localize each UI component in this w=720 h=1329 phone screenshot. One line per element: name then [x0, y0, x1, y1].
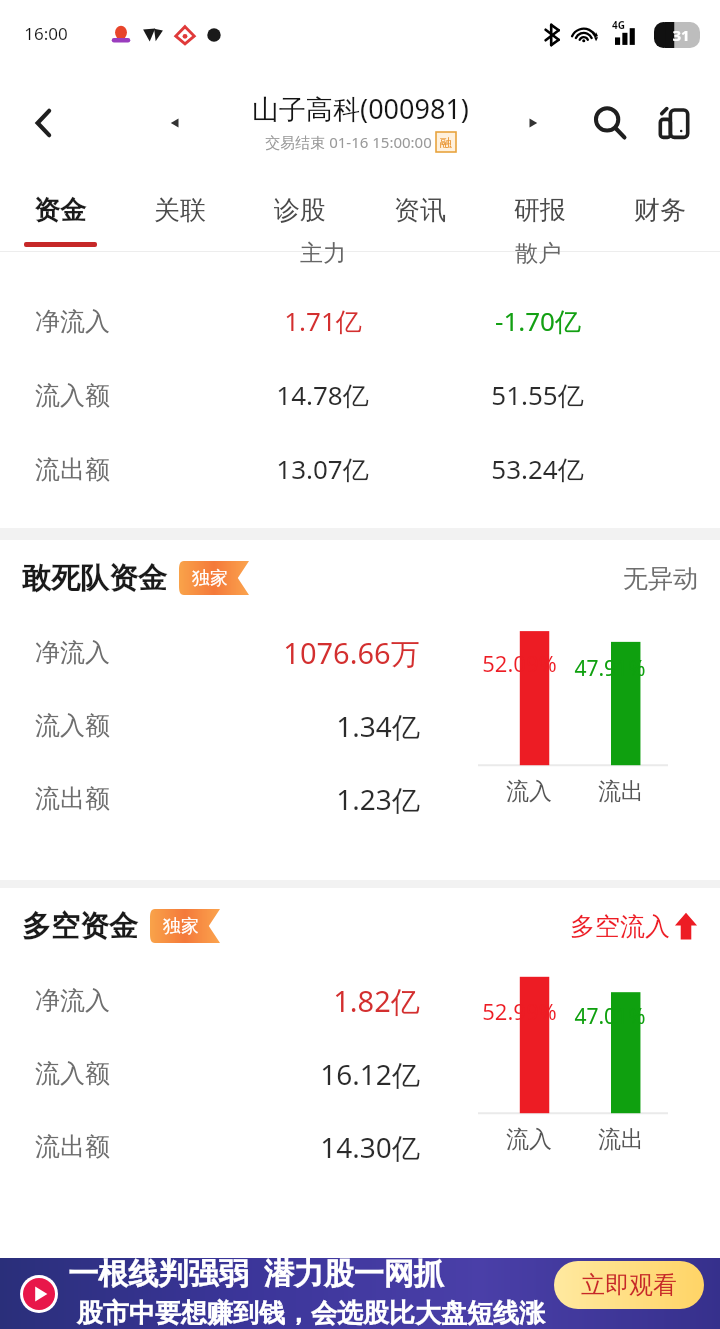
staticText: 51.55亿 — [491, 377, 584, 413]
button[interactable]: 关联 — [120, 176, 240, 251]
staticText: 1.34亿 — [336, 707, 420, 745]
button[interactable]: 净流入 — [0, 284, 720, 358]
button[interactable]: 净流入 — [0, 964, 720, 1037]
staticText: 诊股 — [274, 194, 326, 227]
button[interactable]: 多空资金 — [0, 888, 720, 964]
staticText: 敢死队资金 — [22, 560, 167, 597]
button[interactable]: 流出额 — [0, 1110, 720, 1183]
staticText: 独家 — [192, 567, 228, 590]
staticText: 流入 — [506, 777, 552, 806]
staticText: 关联 — [154, 194, 206, 227]
staticText: 1.23亿 — [336, 780, 420, 818]
button[interactable]: 资金 — [0, 176, 120, 251]
staticText: 多空流入 — [570, 911, 670, 942]
staticText: 1.82亿 — [333, 981, 420, 1021]
staticText: 流出 — [598, 1125, 644, 1154]
staticText: 47.01% — [574, 1002, 646, 1031]
staticText: 16.12亿 — [320, 1055, 420, 1093]
staticText: 独家 — [163, 915, 199, 938]
staticText: 1.71亿 — [284, 303, 362, 339]
staticText: 53.24亿 — [491, 451, 584, 487]
button[interactable]: Compare — [642, 91, 706, 155]
button[interactable]: 资讯 — [360, 176, 480, 251]
button[interactable]: 流出额 — [0, 762, 720, 835]
staticText: 47.91% — [574, 654, 646, 683]
button[interactable]: Search — [578, 91, 642, 155]
button[interactable]: 流入额 — [0, 358, 720, 432]
button[interactable]: 流出额 — [0, 432, 720, 506]
button[interactable]: 立即观看 — [554, 1261, 704, 1309]
staticText: 财务 — [634, 194, 686, 227]
button[interactable]: 流入额 — [0, 1037, 720, 1110]
staticText: 16:00 — [24, 22, 68, 45]
staticText: 研报 — [514, 194, 566, 227]
staticText: 立即观看 — [581, 1270, 677, 1300]
staticText: 股市中要想赚到钱，会选股比大盘短线涨跌更重要 — [68, 1297, 554, 1327]
staticText: 流入额 — [35, 380, 110, 411]
staticText: 多空资金 — [22, 908, 138, 945]
staticText: 52.99% — [482, 996, 557, 1026]
button[interactable]: 财务 — [600, 176, 720, 251]
staticText: 52.09% — [482, 648, 557, 678]
staticText: 流入额 — [35, 1058, 110, 1089]
staticText: 流出额 — [35, 1131, 110, 1162]
staticText: 融 — [440, 135, 452, 150]
staticText: 13.07亿 — [276, 451, 369, 487]
staticText: 山子高科(000981) — [252, 90, 469, 127]
staticText: 14.78亿 — [276, 377, 369, 413]
staticText: 净流入 — [35, 637, 110, 668]
staticText: 资讯 — [394, 194, 446, 227]
staticText: 净流入 — [35, 985, 110, 1016]
staticText: -1.70亿 — [495, 303, 581, 339]
staticText: 散户 — [515, 239, 561, 268]
staticText: 4G — [612, 18, 625, 32]
button[interactable]: 流入额 — [0, 689, 720, 762]
staticText: 资金 — [34, 194, 86, 227]
staticText: 1076.66万 — [283, 633, 420, 673]
button[interactable]: 研报 — [480, 176, 600, 251]
button[interactable]: Back — [12, 91, 76, 155]
staticText: 交易结束 01-16 15:00:00 — [265, 132, 432, 152]
staticText: 一根线判强弱 潜力股一网抓 — [68, 1252, 444, 1293]
staticText: 流出额 — [35, 454, 110, 485]
staticText: 流入 — [506, 1125, 552, 1154]
staticText: 无异动 — [623, 563, 698, 594]
button[interactable]: 敢死队资金 — [0, 540, 720, 616]
button[interactable]: 一根线判强弱 潜力股一网抓 — [0, 1258, 720, 1329]
staticText: 流出 — [598, 777, 644, 806]
staticText: 14.30亿 — [320, 1128, 420, 1166]
staticText: 流出额 — [35, 783, 110, 814]
staticText: 净流入 — [35, 306, 110, 337]
button[interactable]: 净流入 — [0, 616, 720, 689]
staticText: 31 — [672, 25, 690, 45]
button[interactable]: 诊股 — [240, 176, 360, 251]
staticText: 流入额 — [35, 710, 110, 741]
staticText: 主力 — [300, 239, 346, 268]
